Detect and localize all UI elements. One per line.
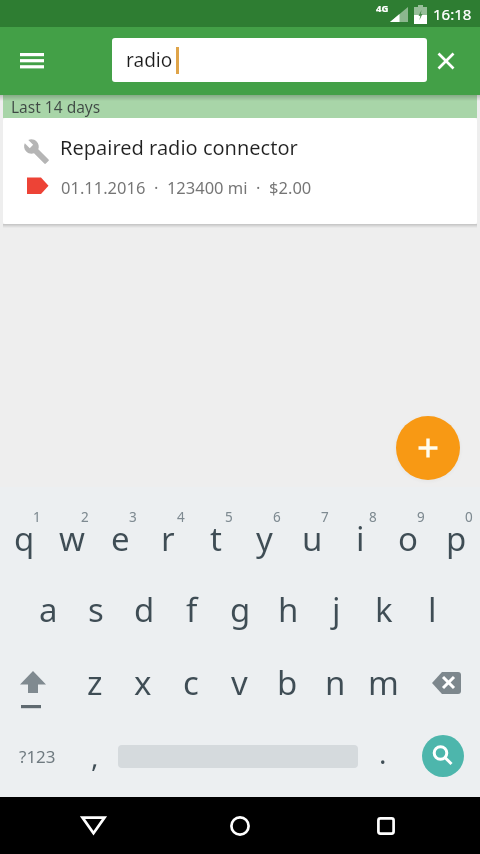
button[interactable] <box>63 796 123 854</box>
button[interactable] <box>0 500 48 573</box>
button[interactable] <box>13 738 61 774</box>
staticText: Last 14 days <box>11 96 101 117</box>
button[interactable] <box>359 646 407 719</box>
button[interactable] <box>75 730 115 778</box>
button[interactable] <box>356 796 416 854</box>
staticText: 4 <box>177 508 185 526</box>
button[interactable] <box>240 500 288 573</box>
button[interactable] <box>12 45 52 77</box>
button[interactable] <box>210 796 270 854</box>
button[interactable] <box>120 573 168 646</box>
button[interactable]: radio <box>112 38 427 82</box>
staticText: q <box>14 516 35 561</box>
button[interactable] <box>263 646 311 719</box>
button[interactable] <box>215 646 263 719</box>
staticText: e <box>111 516 130 561</box>
staticText: a <box>39 587 58 632</box>
button[interactable] <box>72 573 120 646</box>
staticText: radio <box>126 47 173 73</box>
button[interactable] <box>144 500 192 573</box>
button[interactable] <box>408 573 456 646</box>
button[interactable] <box>360 573 408 646</box>
staticText: t <box>210 516 222 561</box>
button[interactable] <box>192 500 240 573</box>
button[interactable] <box>363 730 403 778</box>
staticText: 2 <box>81 508 89 526</box>
button[interactable] <box>396 416 460 480</box>
button[interactable] <box>48 500 96 573</box>
staticText: b <box>277 660 298 705</box>
staticText: 16:18 <box>433 4 472 23</box>
button[interactable] <box>71 646 119 719</box>
button[interactable] <box>428 43 464 79</box>
staticText: d <box>134 587 155 632</box>
button[interactable] <box>312 573 360 646</box>
staticText: 3 <box>129 508 137 526</box>
staticText: g <box>230 587 251 632</box>
staticText: i <box>356 516 365 561</box>
staticText: x <box>134 660 152 705</box>
button[interactable] <box>168 573 216 646</box>
button[interactable] <box>167 646 215 719</box>
staticText: 7 <box>321 508 329 526</box>
button[interactable] <box>96 500 144 573</box>
staticText: u <box>302 516 323 561</box>
staticText: l <box>428 587 437 632</box>
staticText: 4G <box>376 2 389 14</box>
staticText: 5 <box>225 508 233 526</box>
button[interactable] <box>119 646 167 719</box>
staticText: ?123 <box>19 745 56 768</box>
staticText: n <box>325 660 346 705</box>
staticText: Repaired radio connector <box>60 134 298 161</box>
staticText: 01.11.2016 · 123400 mi · $2.00 <box>61 176 312 198</box>
staticText: m <box>368 660 399 705</box>
button[interactable] <box>432 500 480 573</box>
staticText: j <box>332 587 341 632</box>
staticText: 0 <box>465 508 473 526</box>
staticText: z <box>87 660 103 705</box>
button[interactable] <box>384 500 432 573</box>
staticText: . <box>379 734 387 772</box>
button[interactable] <box>416 650 478 714</box>
button[interactable] <box>311 646 359 719</box>
staticText: c <box>183 660 199 705</box>
button[interactable] <box>336 500 384 573</box>
button[interactable]: Repaired radio connector <box>3 118 477 224</box>
staticText: r <box>161 516 175 561</box>
staticText: v <box>231 660 248 705</box>
staticText: 1 <box>33 508 41 526</box>
button[interactable] <box>288 500 336 573</box>
button[interactable] <box>216 573 264 646</box>
button[interactable] <box>264 573 312 646</box>
staticText: p <box>446 516 467 561</box>
staticText: 6 <box>273 508 281 526</box>
staticText: f <box>186 587 198 632</box>
button[interactable] <box>24 573 72 646</box>
staticText: y <box>256 516 273 561</box>
staticText: 9 <box>417 508 425 526</box>
staticText: 8 <box>369 508 377 526</box>
staticText: w <box>59 516 85 561</box>
staticText: , <box>91 737 99 775</box>
button[interactable] <box>422 735 464 777</box>
staticText: k <box>375 587 393 632</box>
staticText: h <box>278 587 299 632</box>
staticText: s <box>88 587 104 632</box>
staticText: o <box>398 516 418 561</box>
button[interactable] <box>4 650 66 714</box>
